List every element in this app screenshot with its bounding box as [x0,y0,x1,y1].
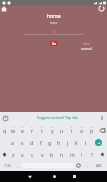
button[interactable]: h [54,136,63,148]
button[interactable]: Home [0,5,8,13]
staticText: 7 [61,125,63,128]
staticText: ! [81,151,83,158]
button[interactable]: f [36,136,45,148]
staticText: h [57,139,61,146]
button[interactable]: Backspace [97,124,107,136]
button[interactable]: Enter [90,136,107,148]
staticText: 3 [22,125,24,128]
staticText: s [21,139,24,146]
staticText: q [3,127,7,134]
button[interactable]: History [97,4,105,12]
button[interactable]: 7 [57,124,67,136]
button[interactable]: s [17,136,27,148]
button[interactable]: j [63,136,72,148]
staticText: 1 [4,125,6,128]
button[interactable]: 6 [47,124,57,136]
staticText: home [47,13,61,20]
button[interactable]: More options [98,114,106,122]
staticText: ABC [96,164,103,168]
button[interactable]: m [67,148,77,160]
button[interactable]: Caps lock [97,148,107,160]
button[interactable]: ABC [92,160,107,171]
staticText: home [50,21,58,25]
staticText: 9 [81,125,83,128]
button[interactable]: z [9,148,18,160]
staticText: o [80,127,84,134]
staticText: c [31,151,34,158]
button[interactable]: v [37,148,47,160]
staticText: u [60,127,64,134]
staticText: 5 [41,125,43,128]
button[interactable]: c [27,148,37,160]
staticText: 6 [51,125,53,128]
button[interactable]: 3 [18,124,27,136]
button[interactable]: 2 [9,124,18,136]
button[interactable]: x [18,148,27,160]
staticText: Go [52,42,57,46]
staticText: f [40,139,42,146]
staticText: v [41,151,44,158]
button[interactable]: 8 [67,124,77,136]
button[interactable]: Back [25,172,34,181]
button[interactable]: l [81,136,90,148]
staticText: animal [81,46,92,51]
button[interactable]: b [47,148,57,160]
button[interactable]: d [27,136,36,148]
button[interactable]: ! [77,148,87,160]
button[interactable]: g [45,136,54,148]
staticText: . [87,163,89,168]
button[interactable]: k [72,136,81,148]
staticText: x [21,151,24,158]
button[interactable]: 1 [0,124,9,136]
staticText: 4 [31,125,33,128]
staticText: z [12,151,15,158]
staticText: , [17,163,19,168]
staticText: k [75,139,78,146]
staticText: j [67,139,69,146]
staticText: d [30,139,34,146]
button[interactable]: Clipboard [1,114,9,122]
staticText: p [90,127,94,134]
button[interactable]: Recents [70,172,79,181]
button[interactable]: n [57,148,67,160]
staticText: ?123 [4,164,11,168]
button[interactable]: 4 [27,124,37,136]
button[interactable]: 9 [77,124,87,136]
button[interactable]: , [14,160,22,171]
staticText: w [11,127,16,134]
staticText: 2 [13,125,15,128]
staticText: r [31,127,34,134]
staticText: i [71,127,73,134]
staticText: 8 [71,125,73,128]
button[interactable]: Shift [0,148,9,160]
staticText: m [70,151,75,158]
staticText: b [50,151,54,158]
staticText: 0 [91,125,93,128]
button[interactable]: ? [87,148,97,160]
button[interactable]: 0 [87,124,97,136]
staticText: name [83,42,90,46]
button[interactable]: Home [50,172,59,181]
staticText: ? [91,151,94,158]
staticText: n [60,151,64,158]
staticText: g [48,139,52,146]
staticText: e [21,127,24,134]
staticText: Suggest content? Tap info [37,115,79,120]
button[interactable]: ?123 [0,160,14,171]
button[interactable]: Search field [24,28,84,35]
button[interactable]: Go [50,41,58,46]
staticText: a [11,139,14,146]
staticText: t [41,127,43,134]
button[interactable]: a [7,136,17,148]
staticText: y [51,127,54,134]
staticText: l [85,139,87,146]
button[interactable]: Emoji [74,160,83,171]
button[interactable]: 5 [37,124,47,136]
